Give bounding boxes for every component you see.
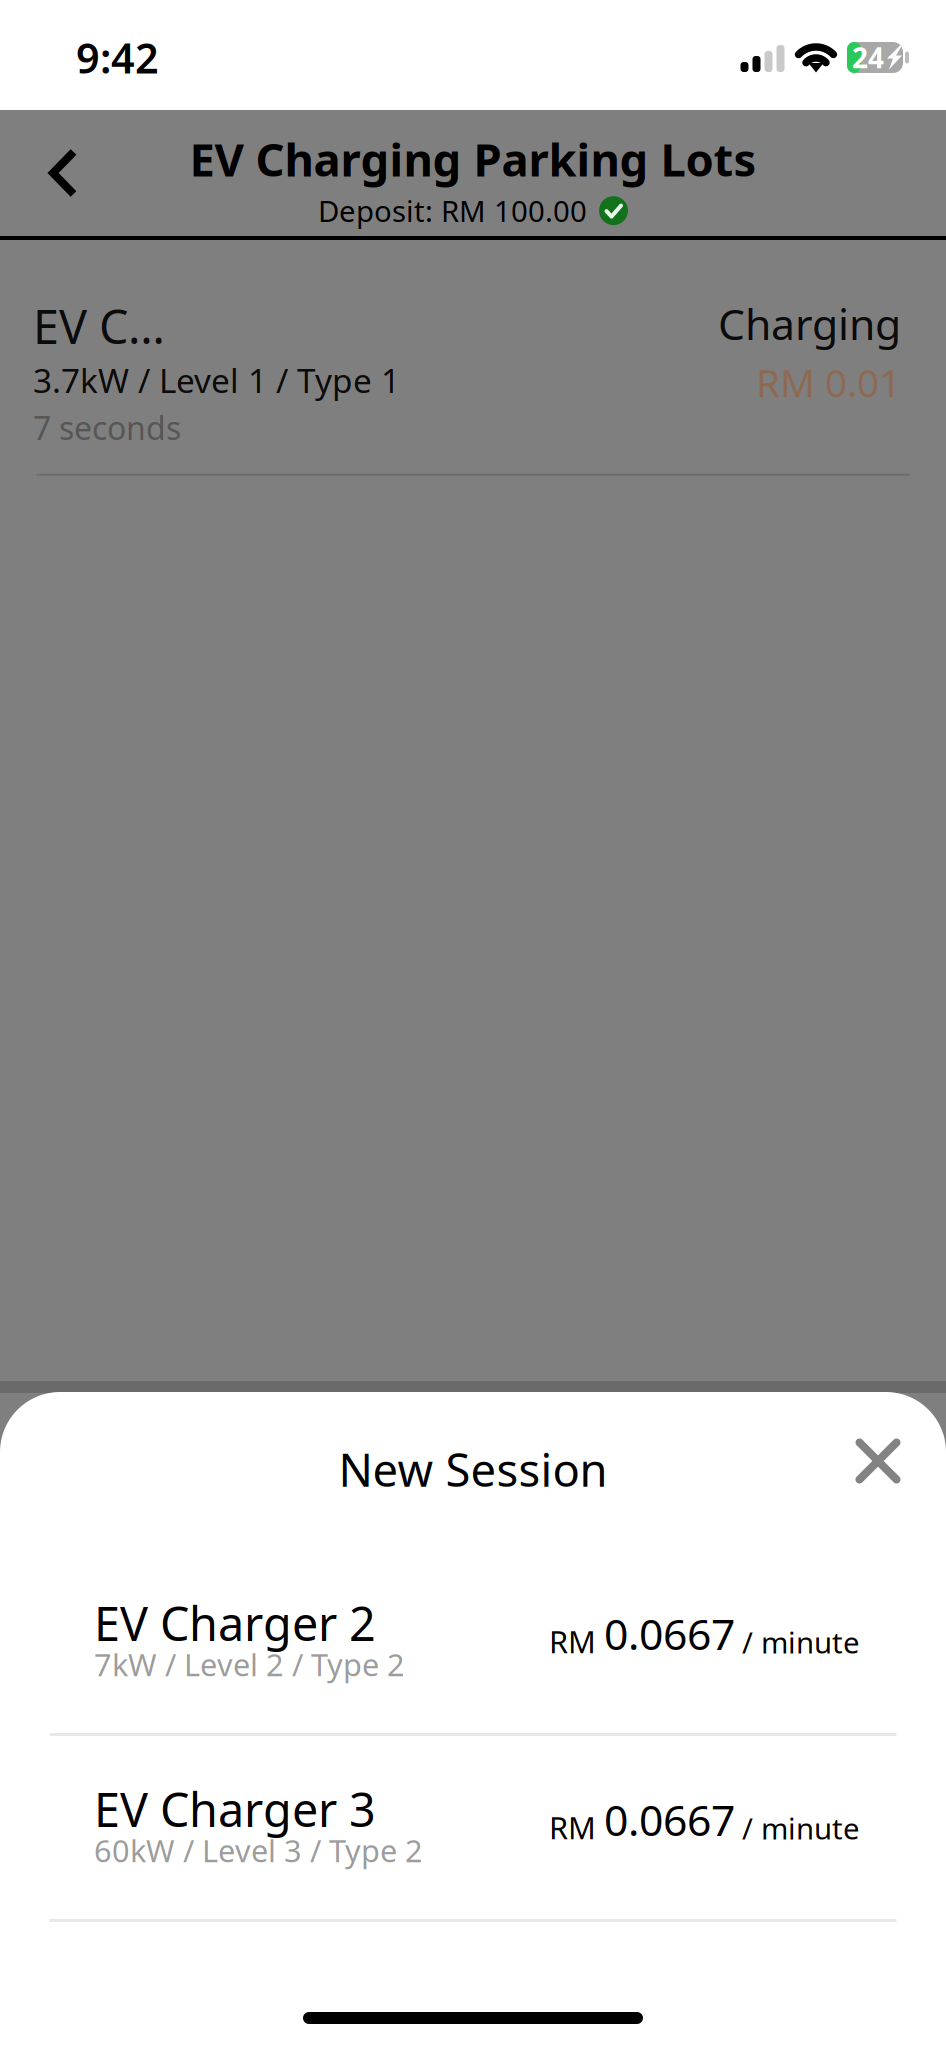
button[interactable]: EV Charger 3 (0, 1778, 946, 1919)
staticText: EV C… (33, 295, 165, 357)
button[interactable]: EV Charger 2 (0, 1592, 946, 1733)
staticText: 3.7kW / Level 1 / Type 1 (33, 358, 400, 402)
staticText: New Session (338, 1439, 607, 1499)
staticText: 9:42 (76, 30, 159, 85)
staticText: 24 (852, 39, 884, 76)
staticText: EV Charging Parking Lots (189, 129, 756, 189)
staticText: / minute (742, 1623, 860, 1662)
staticText: RM (549, 1807, 596, 1848)
staticText: EV Charger 3 (94, 1778, 376, 1840)
staticText: 7kW / Level 2 / Type 2 (94, 1644, 405, 1685)
staticText: RM (549, 1621, 596, 1662)
button[interactable]: Close (824, 1407, 932, 1515)
staticText: / minute (742, 1809, 860, 1848)
staticText: RM 0.01 (756, 357, 901, 408)
staticText: 0.0667 (604, 1605, 735, 1662)
staticText: EV Charger 2 (94, 1592, 376, 1654)
staticText: 0.0667 (604, 1791, 735, 1848)
staticText: 60kW / Level 3 / Type 2 (94, 1830, 423, 1871)
button[interactable]: Back (0, 110, 127, 236)
staticText: Deposit: RM 100.00 (318, 191, 587, 230)
staticText: Charging (718, 295, 901, 352)
staticText: 7 seconds (33, 406, 181, 449)
